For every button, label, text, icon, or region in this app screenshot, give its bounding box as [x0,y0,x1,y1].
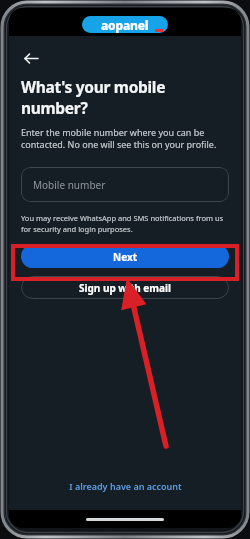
staticText: What's your mobile number? [21,76,229,118]
staticText: Enter the mobile number where you can be… [21,126,229,151]
staticText: Mobile number [33,178,106,192]
button[interactable]: Next [21,245,229,268]
staticText: I already have an account [69,480,182,492]
staticText: Next [113,250,138,264]
staticText: You may receive WhatsApp and SMS notific… [21,213,229,234]
staticText: aopanel [101,17,149,33]
button[interactable]: Back [17,44,45,72]
button[interactable]: I already have an account [9,480,241,492]
staticText: Sign up with email [79,281,172,295]
button[interactable]: Mobile number [21,167,229,202]
button[interactable]: Sign up with email [21,276,229,299]
